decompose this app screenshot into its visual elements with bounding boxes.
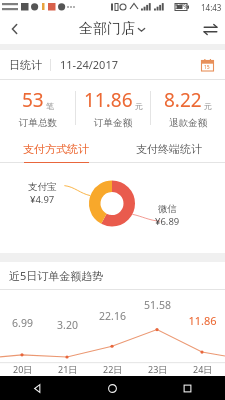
staticText: ¥6.89	[155, 215, 180, 228]
staticText: 近5日订单金额趋势	[9, 268, 104, 283]
staticText: 21日	[58, 363, 78, 375]
staticText: 57%	[175, 2, 189, 12]
staticText: 3.20	[57, 318, 78, 332]
staticText: 退款金额	[169, 117, 207, 129]
button[interactable]: Home	[75, 376, 150, 400]
staticText: 11-24/2017	[60, 57, 118, 72]
button[interactable]: 11.86	[76, 80, 150, 136]
staticText: 11.86	[84, 87, 133, 113]
staticText: 8.22	[164, 87, 202, 113]
staticText: 20日	[13, 363, 33, 375]
staticText: 支付宝	[28, 181, 57, 193]
button[interactable]: Back	[0, 14, 30, 44]
staticText: 51.58	[144, 298, 171, 312]
button[interactable]: 支付终端统计	[112, 136, 225, 162]
staticText: 22日	[103, 363, 123, 375]
staticText: 53	[22, 87, 44, 113]
staticText: 日统计	[9, 58, 42, 72]
button[interactable]: Switch	[195, 14, 225, 44]
staticText: 支付终端统计	[136, 142, 202, 156]
staticText: 元	[135, 101, 143, 111]
staticText: 23日	[148, 363, 168, 375]
staticText: 元	[204, 101, 212, 111]
staticText: 6.99	[12, 316, 33, 330]
staticText: 订单金额	[94, 117, 132, 129]
staticText: 22.16	[99, 309, 126, 323]
staticText: 支付方式统计	[23, 142, 89, 156]
staticText: 微信	[158, 203, 177, 215]
button[interactable]: 日统计	[9, 58, 42, 72]
button[interactable]: 支付方式统计	[0, 136, 112, 162]
button[interactable]: 全部门店	[79, 20, 146, 38]
button[interactable]: Pick date	[198, 56, 216, 74]
staticText: 11.86	[188, 313, 217, 328]
button[interactable]: 53	[0, 80, 75, 136]
staticText: 15	[204, 64, 210, 71]
staticText: 24日	[193, 363, 213, 375]
staticText: 订单总数	[19, 117, 57, 129]
button[interactable]: 8.22	[151, 80, 225, 136]
staticText: 笔	[46, 101, 54, 111]
button[interactable]: Recents	[150, 376, 225, 400]
button[interactable]: Back	[0, 376, 75, 400]
staticText: 14:43	[201, 2, 222, 13]
staticText: 全部门店	[79, 20, 135, 38]
staticText: ¥4.97	[30, 193, 55, 206]
